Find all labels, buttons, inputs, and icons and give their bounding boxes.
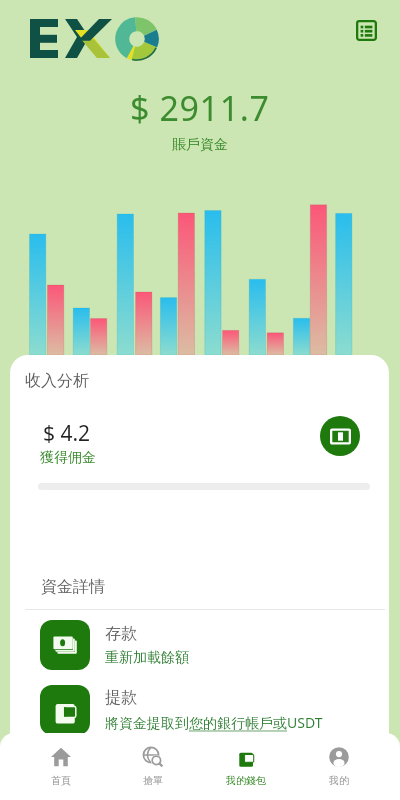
button[interactable]: 存款 bbox=[10, 620, 389, 670]
button[interactable]: Commission bbox=[320, 416, 360, 456]
staticText: 我的錢包 bbox=[226, 774, 266, 787]
staticText: 搶單 bbox=[143, 774, 163, 787]
staticText: 賬戶資金 bbox=[172, 136, 228, 154]
staticText: 將資金提取到您的銀行帳戶或USDT bbox=[105, 713, 323, 732]
staticText: 首頁 bbox=[51, 774, 71, 787]
staticText: 提款 bbox=[105, 688, 137, 708]
staticText: 資金詳情 bbox=[41, 577, 105, 597]
button[interactable]: 提款 bbox=[10, 685, 389, 735]
button[interactable]: 我的錢包 bbox=[199, 733, 292, 800]
staticText: $ 2911.7 bbox=[130, 85, 270, 131]
button[interactable]: 我的 bbox=[292, 733, 385, 800]
staticText: 存款 bbox=[105, 624, 137, 644]
staticText: $ 4.2 bbox=[43, 419, 91, 448]
staticText: 重新加載餘額 bbox=[105, 649, 189, 667]
button[interactable]: 搶單 bbox=[107, 733, 199, 800]
button[interactable]: Transaction records bbox=[350, 14, 382, 46]
staticText: 獲得佣金 bbox=[40, 449, 96, 467]
button[interactable]: 首頁 bbox=[15, 733, 107, 800]
staticText: 我的 bbox=[329, 774, 349, 787]
staticText: 收入分析 bbox=[25, 371, 89, 391]
